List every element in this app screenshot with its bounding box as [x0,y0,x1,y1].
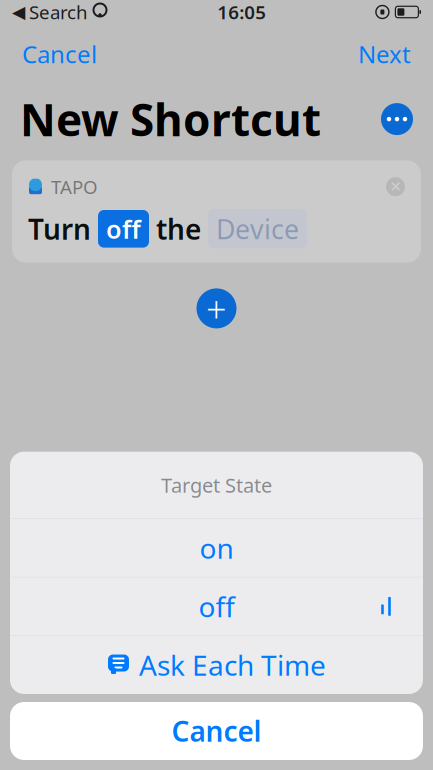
staticText: + [206,284,227,332]
staticText: Device [216,211,299,246]
button[interactable]: Add action [196,284,236,332]
staticText: on [199,529,233,566]
staticText: 16:05 [217,0,266,24]
button[interactable]: on [10,519,423,577]
staticText: Cancel [171,712,261,750]
staticText: Search [29,0,88,24]
staticText: off [198,588,234,625]
staticText: ✕ [389,178,401,195]
staticText: Turn [28,210,91,247]
button[interactable]: Cancel [18,32,101,76]
staticText: Ask Each Time [139,646,326,684]
staticText: Next [358,38,411,70]
button[interactable]: off [10,577,423,635]
staticText: Target State [161,472,272,498]
staticText: New Shortcut [20,90,321,148]
button[interactable]: TAPO [12,160,421,262]
staticText: off [106,212,141,246]
button[interactable]: Cancel [10,702,423,760]
button[interactable]: More options [381,103,413,135]
staticText: the [156,210,201,247]
button[interactable]: Ask Each Time [10,636,423,694]
staticText: ◀ [12,2,25,22]
button[interactable]: Next [354,32,415,76]
staticText: Cancel [22,38,97,70]
staticText: TAPO [51,174,98,199]
